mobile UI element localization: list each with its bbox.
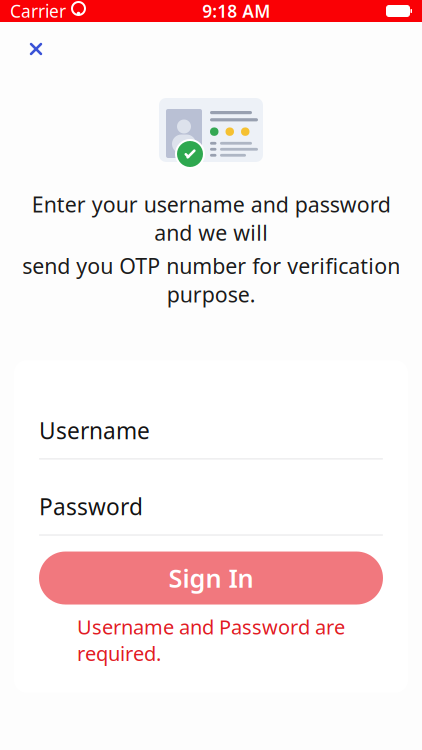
staticText: Username and Password are required. bbox=[77, 613, 345, 667]
button[interactable]: Close bbox=[14, 30, 58, 68]
staticText: Sign In bbox=[168, 561, 253, 595]
staticText: Carrier bbox=[10, 0, 66, 22]
staticText: 9:18 AM bbox=[202, 0, 270, 22]
staticText: Enter your username and password and we … bbox=[31, 190, 390, 247]
staticText: Password bbox=[39, 491, 143, 521]
button[interactable]: Sign In bbox=[39, 551, 383, 604]
staticText: send you OTP number for verification pur… bbox=[22, 252, 400, 308]
staticText: Username bbox=[39, 415, 150, 445]
